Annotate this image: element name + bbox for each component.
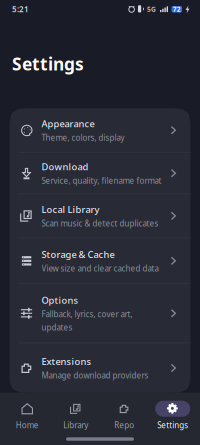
staticText: Repo: [114, 420, 134, 430]
staticText: Home: [16, 420, 39, 430]
button[interactable]: Appearance: [9, 108, 190, 152]
staticText: updates: [41, 322, 72, 333]
button[interactable]: Local Library: [9, 194, 190, 238]
staticText: Local Library: [41, 203, 99, 215]
staticText: 5:21: [12, 4, 29, 14]
staticText: Storage & Cache: [41, 248, 114, 260]
staticText: Extensions: [41, 355, 91, 368]
staticText: Download: [41, 160, 88, 173]
button[interactable]: Home: [3, 401, 51, 430]
staticText: Theme, colors, display: [41, 132, 124, 143]
staticText: Library: [63, 420, 88, 430]
button[interactable]: Library: [51, 401, 100, 430]
staticText: Options: [41, 294, 78, 306]
staticText: Scan music & detect duplicates: [41, 218, 158, 229]
staticText: 5G: [147, 5, 156, 14]
staticText: Fallback, lyrics, cover art,: [41, 309, 132, 319]
button[interactable]: Download: [9, 153, 190, 193]
button[interactable]: Repo: [100, 401, 148, 430]
staticText: Settings: [157, 420, 188, 430]
button[interactable]: Settings: [148, 401, 197, 430]
button[interactable]: Extensions: [9, 343, 190, 393]
staticText: Settings: [12, 52, 84, 75]
staticText: Service, quality, filename format: [41, 175, 161, 186]
staticText: Appearance: [41, 117, 94, 130]
staticText: 72: [173, 5, 181, 14]
staticText: Manage download providers: [41, 370, 148, 381]
staticText: View size and clear cached data: [41, 263, 158, 274]
button[interactable]: Storage & Cache: [9, 238, 190, 283]
button[interactable]: Options: [9, 284, 190, 342]
